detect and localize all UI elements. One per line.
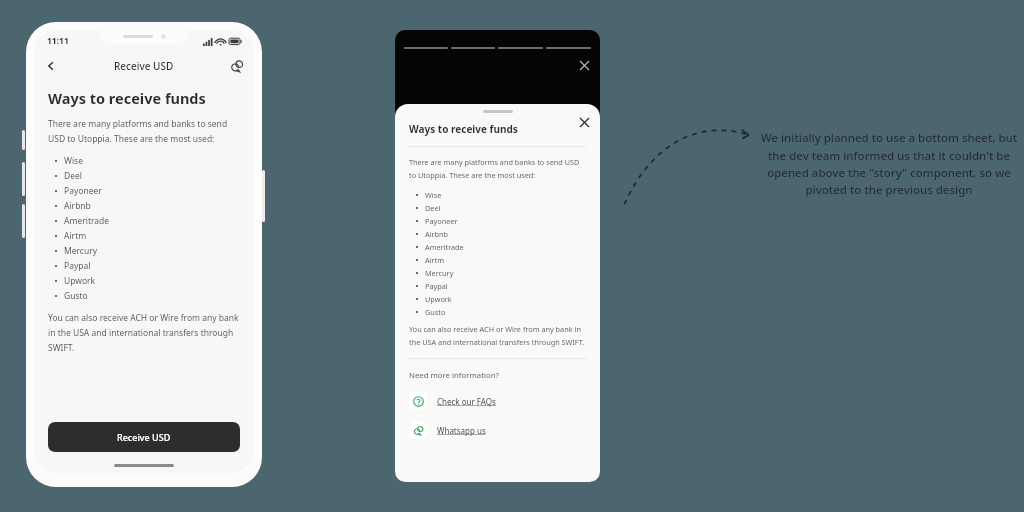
staticText: Paypal	[64, 260, 91, 272]
staticText: You can also receive ACH or Wire from an…	[409, 324, 586, 347]
staticText: Deel	[425, 203, 441, 213]
staticText: Need more information?	[409, 370, 499, 381]
staticText: Wise	[425, 190, 442, 200]
staticText: Payoneer	[425, 216, 458, 226]
button[interactable]: Receive USD	[48, 422, 240, 452]
staticText: Receive USD	[114, 59, 174, 73]
staticText: Gusto	[425, 307, 446, 317]
staticText: Ameritrade	[425, 242, 464, 252]
staticText: Whatsapp us	[437, 425, 486, 436]
staticText: Ways to receive funds	[409, 122, 518, 136]
staticText: There are many platforms and banks to se…	[409, 157, 586, 180]
button[interactable]: Close story	[574, 55, 594, 75]
staticText: Airtm	[425, 255, 445, 265]
staticText: Mercury	[425, 268, 454, 278]
button[interactable]: Support chat	[226, 55, 248, 77]
staticText: You can also receive ACH or Wire from an…	[48, 312, 240, 353]
staticText: Airtm	[64, 230, 87, 242]
staticText: Receive USD	[117, 431, 171, 443]
staticText: There are many platforms and banks to se…	[48, 118, 240, 144]
button[interactable]: Whatsapp us	[409, 419, 586, 441]
staticText: Ways to receive funds	[48, 88, 206, 108]
staticText: Airbnb	[64, 200, 91, 212]
button[interactable]: Back	[40, 55, 62, 77]
staticText: Deel	[64, 170, 82, 182]
staticText: Wise	[64, 155, 83, 167]
button[interactable]: Check our FAQs	[409, 390, 586, 412]
staticText: Upwork	[64, 275, 96, 287]
staticText: Airbnb	[425, 229, 449, 239]
staticText: Mercury	[64, 245, 98, 257]
staticText: Upwork	[425, 294, 452, 304]
button[interactable]: Close sheet	[574, 112, 594, 132]
staticText: Payoneer	[64, 185, 102, 197]
staticText: 11:11	[47, 35, 69, 47]
staticText: Check our FAQs	[437, 396, 496, 407]
staticText: Gusto	[64, 290, 88, 302]
staticText: We initially planned to use a bottom she…	[760, 130, 1018, 197]
staticText: Paypal	[425, 281, 448, 291]
staticText: Ameritrade	[64, 215, 110, 227]
